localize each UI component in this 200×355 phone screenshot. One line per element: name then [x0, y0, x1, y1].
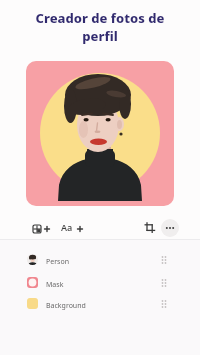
staticText: Aa — [61, 221, 73, 233]
staticText: Creador de fotos de perfil — [0, 9, 200, 45]
button[interactable] — [142, 220, 158, 236]
button[interactable]: Background — [0, 293, 200, 315]
button[interactable]: Aa — [60, 220, 88, 236]
button[interactable] — [26, 61, 174, 206]
button[interactable]: Person — [0, 249, 200, 271]
button[interactable]: Mask — [0, 272, 200, 294]
staticText: Background — [46, 301, 86, 311]
staticText: Mask — [46, 280, 64, 290]
staticText: Person — [46, 257, 69, 267]
button[interactable] — [28, 219, 52, 237]
button[interactable] — [161, 219, 179, 237]
